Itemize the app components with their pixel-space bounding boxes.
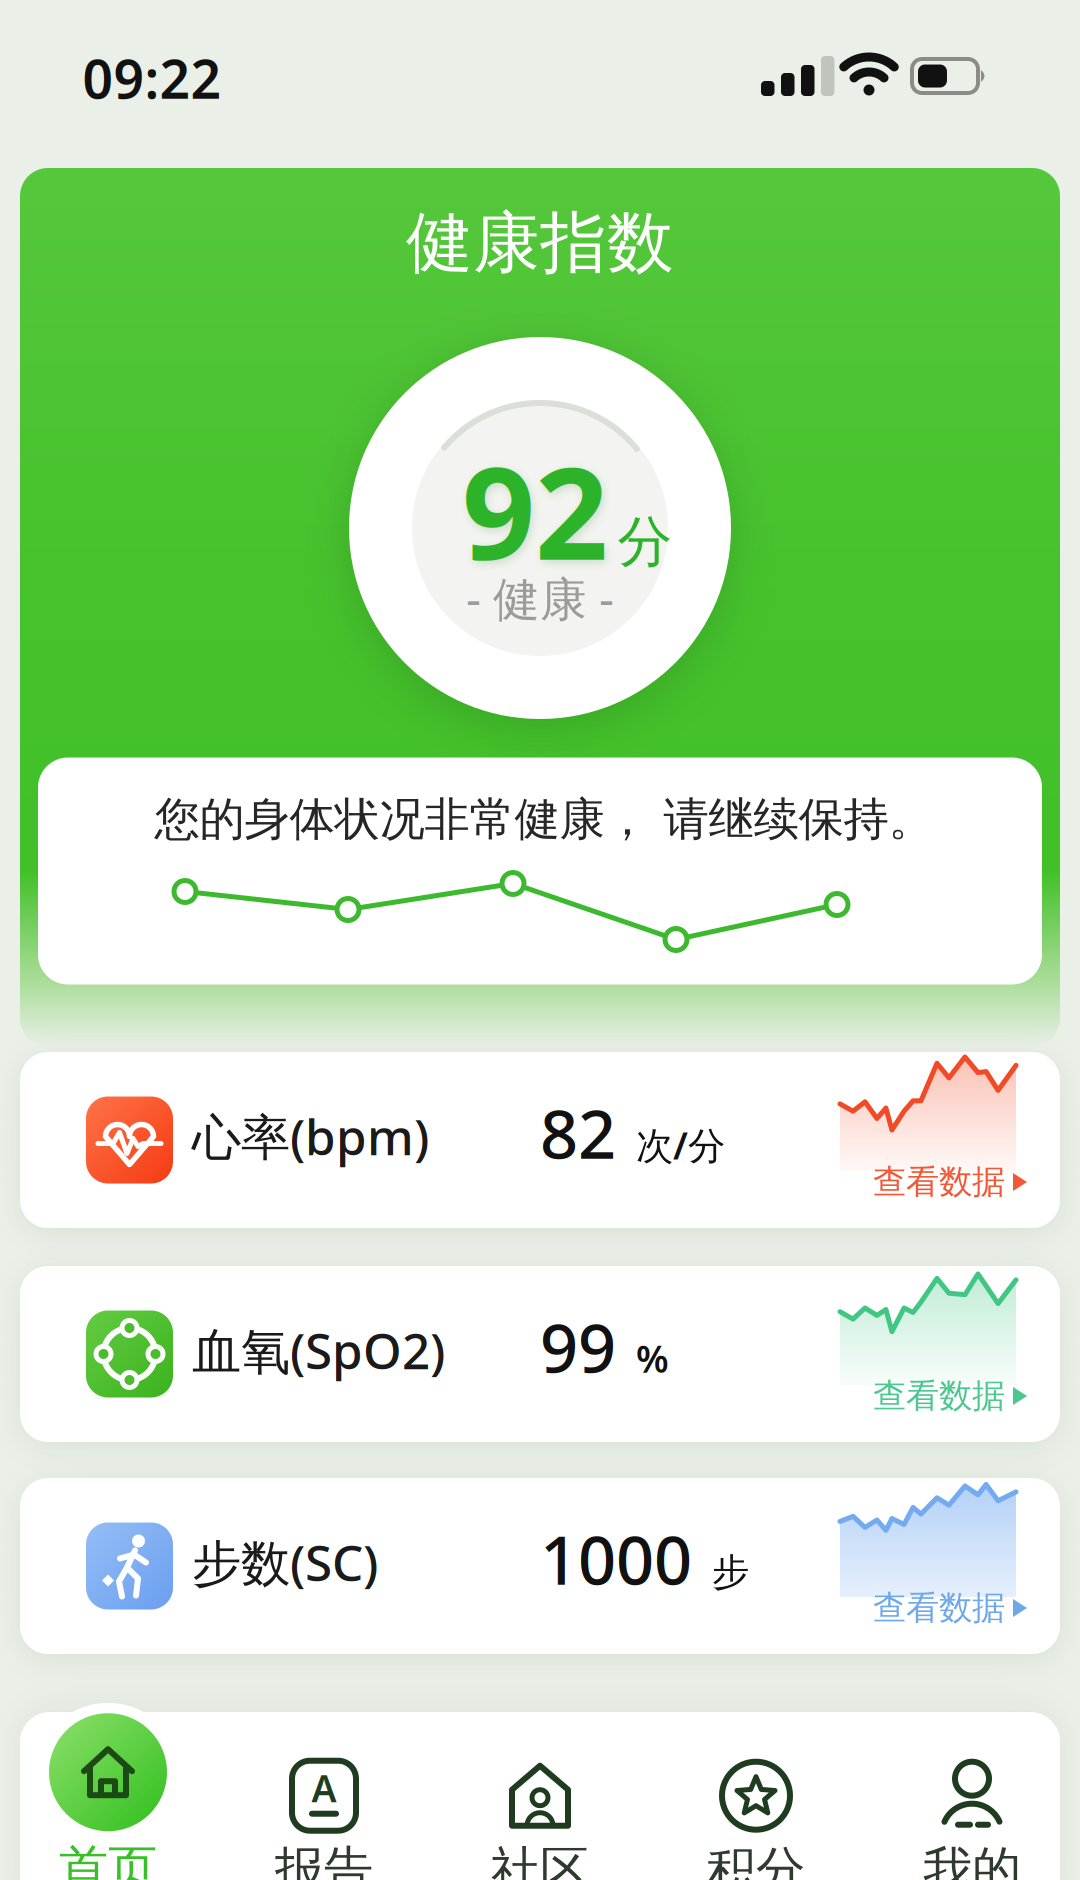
button[interactable]: 血氧(SpO2): [20, 1266, 1060, 1442]
staticText: 我的: [923, 1840, 1021, 1880]
staticText: 1000: [540, 1515, 692, 1603]
staticText: %: [636, 1334, 669, 1383]
button[interactable]: 社区: [491, 1760, 589, 1880]
staticText: 99: [540, 1303, 616, 1391]
button[interactable]: 步数(SC): [20, 1478, 1060, 1654]
button[interactable]: 心率(bpm): [20, 1052, 1060, 1228]
staticText: 查看数据: [873, 1587, 1005, 1628]
button[interactable]: 我的: [923, 1760, 1021, 1880]
staticText: 心率(bpm): [192, 1103, 429, 1169]
staticText: 分: [617, 508, 672, 575]
staticText: 步数(SC): [192, 1529, 378, 1595]
staticText: 09:22: [82, 43, 221, 113]
staticText: - 健康 -: [466, 567, 614, 629]
staticText: A: [311, 1763, 336, 1812]
staticText: 查看数据: [873, 1161, 1005, 1202]
staticText: 步: [712, 1549, 749, 1595]
button[interactable]: 首页: [49, 1713, 167, 1880]
staticText: 92: [462, 425, 608, 595]
staticText: 次/分: [636, 1120, 725, 1170]
staticText: 血氧(SpO2): [192, 1317, 445, 1383]
staticText: 您的身体状况非常健康， 请继续保持。: [154, 792, 933, 847]
staticText: 报告: [275, 1840, 373, 1880]
staticText: 82: [540, 1089, 616, 1177]
staticText: 社区: [491, 1840, 589, 1880]
button[interactable]: 积分: [707, 1760, 805, 1880]
staticText: 查看数据: [873, 1375, 1005, 1416]
button[interactable]: A: [275, 1760, 373, 1880]
staticText: 积分: [707, 1840, 805, 1880]
staticText: 健康指数: [406, 202, 674, 284]
staticText: 首页: [59, 1838, 157, 1880]
